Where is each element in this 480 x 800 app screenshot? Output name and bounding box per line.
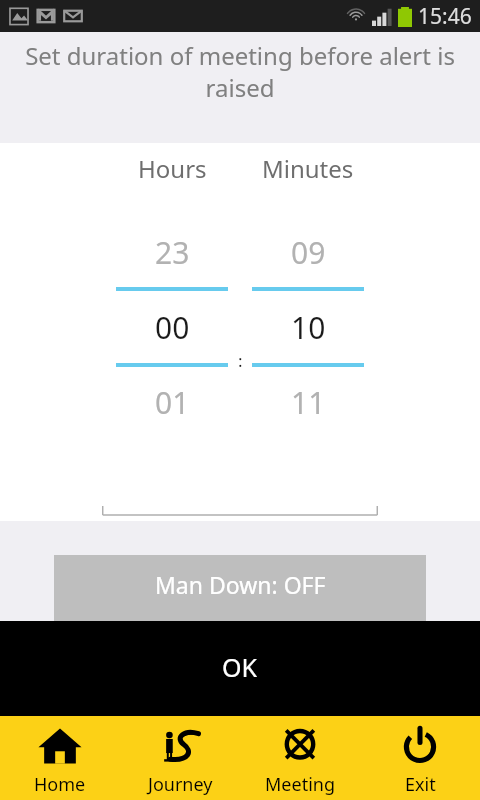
button[interactable]: Exit xyxy=(360,716,480,800)
staticText: 00 xyxy=(155,307,190,348)
button[interactable]: Journey xyxy=(120,716,240,800)
staticText: Man Down: OFF xyxy=(155,569,326,600)
staticText: 09 xyxy=(291,232,326,273)
staticText: 10 xyxy=(291,307,326,348)
button[interactable]: 23 xyxy=(110,218,234,503)
button[interactable]: Man Down: OFF xyxy=(54,555,426,621)
staticText: 11 xyxy=(291,382,326,423)
button[interactable]: Meeting xyxy=(240,716,360,800)
staticText: OK xyxy=(222,650,258,684)
staticText: 01 xyxy=(155,382,190,423)
staticText: Set duration of meeting before alert is … xyxy=(16,39,464,104)
button[interactable]: Home xyxy=(0,716,120,800)
staticText: 23 xyxy=(155,232,190,273)
button[interactable]: OK xyxy=(0,621,480,716)
staticText: 15:46 xyxy=(418,2,472,31)
staticText: Hours xyxy=(138,152,207,185)
staticText: Exit xyxy=(405,772,436,797)
staticText: : xyxy=(238,349,243,372)
staticText: Home xyxy=(34,772,86,797)
staticText: Journey xyxy=(148,772,213,797)
button[interactable]: 09 xyxy=(246,218,370,503)
staticText: Meeting xyxy=(265,772,335,797)
staticText: Minutes xyxy=(262,152,354,185)
